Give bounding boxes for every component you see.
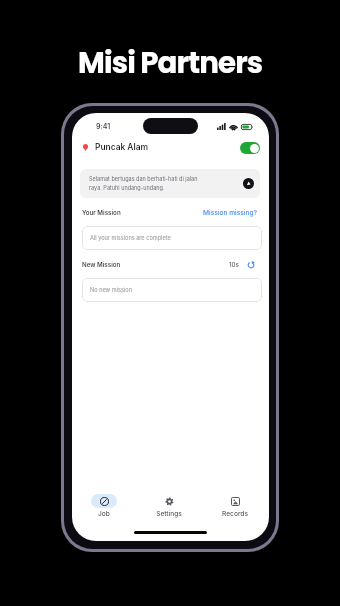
staticText: New Mission (82, 261, 121, 269)
staticText: Puncak Alam (95, 142, 149, 152)
staticText: Your Mission (82, 209, 121, 217)
staticText: Mission missing? (203, 209, 257, 217)
button[interactable]: On duty toggle (240, 142, 260, 154)
staticText: Misi Partners (78, 42, 263, 83)
staticText: 10s (229, 261, 239, 269)
staticText: All your missions are complete (90, 235, 171, 242)
staticText: 9:41 (96, 122, 111, 130)
button[interactable]: Mission missing? (203, 209, 257, 217)
button[interactable]: Settings (136, 494, 202, 518)
staticText: Settings (156, 510, 182, 518)
staticText: Selamat bertugas dan berhati-hati di jal… (89, 176, 239, 192)
staticText: Job (98, 510, 110, 518)
staticText: Records (222, 510, 248, 518)
button[interactable]: Refresh missions (247, 261, 255, 269)
button[interactable]: Job (72, 494, 136, 518)
button[interactable]: Play announcement (243, 178, 254, 189)
button[interactable]: Records (202, 494, 268, 518)
staticText: No new mission (90, 287, 132, 294)
